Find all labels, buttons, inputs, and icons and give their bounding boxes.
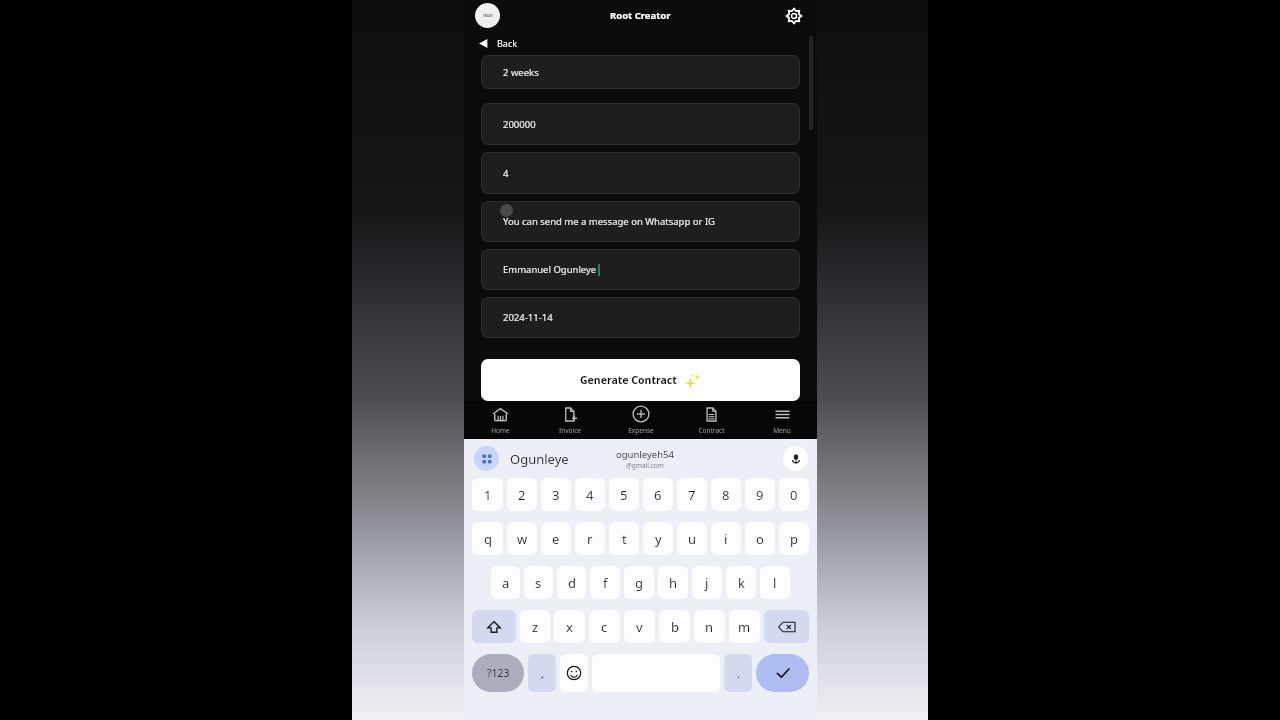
staticText: g — [635, 574, 643, 592]
button[interactable]: n — [694, 610, 725, 643]
staticText: 6 — [654, 486, 662, 504]
staticText: . — [737, 666, 740, 681]
button[interactable]: Expense — [606, 401, 676, 439]
button[interactable]: Invoice — [535, 401, 605, 439]
staticText: f — [603, 574, 608, 592]
staticText: 5 — [620, 486, 628, 504]
staticText: , — [541, 666, 544, 681]
button[interactable]: 7 — [677, 478, 707, 511]
staticText: Contract — [698, 426, 725, 435]
button[interactable]: Menu — [747, 401, 817, 439]
staticText: w — [517, 530, 528, 548]
staticText: r — [587, 530, 593, 548]
button[interactable]: Home — [465, 401, 535, 439]
staticText: 4 — [586, 486, 594, 504]
button[interactable]: , — [528, 654, 556, 692]
button[interactable]: Emoji — [560, 654, 588, 692]
button[interactable]: d — [557, 566, 586, 599]
staticText: h — [669, 574, 678, 592]
button[interactable]: Contract — [676, 401, 746, 439]
button[interactable]: 1 — [472, 478, 503, 511]
button[interactable]: Apps — [474, 446, 499, 471]
button[interactable]: x — [554, 610, 585, 643]
button[interactable]: c — [589, 610, 620, 643]
staticText: TRUST — [483, 14, 493, 18]
button[interactable]: 8 — [711, 478, 741, 511]
button[interactable]: g — [624, 566, 654, 599]
staticText: i — [724, 530, 728, 548]
button[interactable]: h — [658, 566, 688, 599]
button[interactable]: q — [472, 522, 503, 555]
button[interactable]: j — [692, 566, 722, 599]
staticText: Invoice — [559, 426, 581, 435]
button[interactable]: Generate Contract — [481, 359, 800, 401]
button[interactable]: i — [711, 522, 741, 555]
button[interactable]: 2 weeks — [481, 55, 800, 89]
button[interactable]: u — [677, 522, 707, 555]
staticText: 3 — [552, 486, 560, 504]
staticText: Ogunleye — [510, 450, 569, 468]
button[interactable]: ?123 — [472, 654, 524, 692]
button[interactable]: z — [520, 610, 550, 643]
button[interactable]: Enter — [756, 654, 809, 692]
button[interactable]: Back — [464, 31, 817, 55]
button[interactable]: v — [624, 610, 655, 643]
button[interactable]: ogunleyeh54 — [616, 448, 674, 470]
button[interactable]: f — [590, 566, 620, 599]
staticText: x — [566, 618, 573, 636]
staticText: y — [655, 530, 662, 548]
button[interactable]: 4 — [575, 478, 605, 511]
staticText: m — [738, 618, 751, 636]
staticText: Expense — [628, 426, 654, 435]
button[interactable]: Voice input — [783, 446, 808, 471]
button[interactable]: l — [760, 566, 790, 599]
button[interactable]: Backspace — [764, 610, 809, 643]
button[interactable]: t — [609, 522, 639, 555]
button[interactable]: . — [724, 654, 752, 692]
staticText: 2 — [518, 486, 526, 504]
button[interactable]: Settings — [783, 5, 805, 27]
button[interactable]: 0 — [779, 478, 809, 511]
staticText: ogunleyeh54 — [616, 448, 674, 461]
button[interactable]: 5 — [609, 478, 639, 511]
button[interactable]: 9 — [745, 478, 775, 511]
button[interactable]: 2024-11-14 — [481, 297, 800, 338]
button[interactable]: 4 — [481, 152, 800, 194]
staticText: e — [552, 530, 560, 548]
button[interactable]: y — [643, 522, 673, 555]
staticText: a — [502, 574, 510, 592]
button[interactable]: Profile — [475, 3, 500, 28]
button[interactable]: k — [726, 566, 756, 599]
button[interactable]: r — [575, 522, 605, 555]
staticText: j — [705, 574, 709, 592]
button[interactable]: Shift — [472, 610, 516, 643]
staticText: d — [568, 574, 576, 592]
staticText: 2 weeks — [503, 66, 539, 79]
button[interactable]: Ogunleye — [510, 450, 569, 468]
button[interactable]: 6 — [643, 478, 673, 511]
button[interactable]: m — [729, 610, 760, 643]
button[interactable]: 3 — [541, 478, 571, 511]
button[interactable]: 2 — [507, 478, 537, 511]
staticText: t — [622, 530, 627, 548]
button[interactable]: b — [659, 610, 690, 643]
button[interactable]: w — [507, 522, 537, 555]
staticText: 4 — [503, 167, 509, 180]
staticText: n — [705, 618, 714, 636]
button[interactable]: e — [541, 522, 571, 555]
button[interactable]: Emmanuel Ogunleye — [481, 249, 800, 290]
staticText: You can send me a message on Whatsapp or… — [503, 215, 716, 228]
button[interactable]: o — [745, 522, 775, 555]
staticText: Back — [497, 37, 518, 49]
staticText: k — [738, 574, 745, 592]
staticText: 8 — [722, 486, 730, 504]
staticText: 200000 — [503, 118, 536, 131]
button[interactable]: 200000 — [481, 103, 800, 145]
staticText: u — [688, 530, 697, 548]
button[interactable]: s — [524, 566, 553, 599]
button[interactable]: p — [779, 522, 809, 555]
staticText: Generate Contract — [580, 373, 677, 387]
button[interactable]: You can send me a message on Whatsapp or… — [481, 201, 800, 242]
button[interactable]: a — [491, 566, 520, 599]
